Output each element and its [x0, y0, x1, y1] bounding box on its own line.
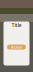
staticText: Action — [11, 44, 22, 50]
staticText: Title — [11, 21, 21, 29]
button[interactable]: Action — [7, 44, 26, 49]
